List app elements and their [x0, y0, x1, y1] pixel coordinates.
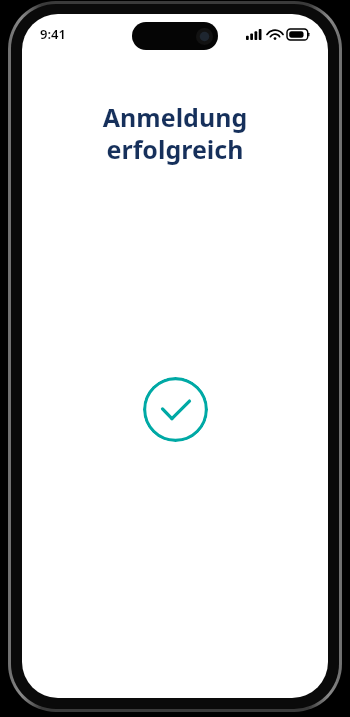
staticText: Anmeldung erfolgreich — [42, 100, 308, 166]
button[interactable]: Erfolgreich — [143, 377, 208, 442]
staticText: 9:41 — [40, 25, 66, 43]
